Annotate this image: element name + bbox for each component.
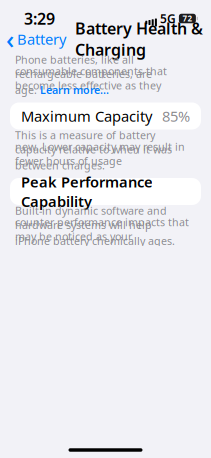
staticText: consumable components that become less e… [15, 64, 167, 92]
staticText: Battery Health & Charging [75, 18, 203, 60]
staticText: This is a measure of battery capacity re… [15, 128, 172, 156]
staticText: Built-in dynamic software and hardware s… [15, 204, 167, 232]
staticText: iPhone battery chemically ages. [15, 234, 175, 248]
staticText: between charges. [15, 158, 105, 172]
button[interactable]: Learn more... [37, 83, 109, 97]
staticText: age. [15, 83, 37, 97]
staticText: Battery [17, 29, 66, 49]
staticText: 3:29 [24, 8, 55, 29]
staticText: counter performance impacts that may be … [15, 215, 189, 243]
staticText: 85% [162, 106, 190, 126]
staticText: ‹ [6, 22, 14, 56]
staticText: Peak Performance Capability [21, 172, 153, 211]
staticText: 5G [160, 10, 176, 26]
staticText: new. Lower capacity may result in fewer … [15, 140, 185, 168]
staticText: 72 [182, 13, 192, 24]
staticText: Maximum Capacity [21, 106, 152, 126]
staticText: Learn more... [40, 83, 109, 97]
button[interactable]: ‹ [0, 19, 70, 59]
staticText: Phone batteries, like all rechargeable b… [15, 53, 152, 81]
